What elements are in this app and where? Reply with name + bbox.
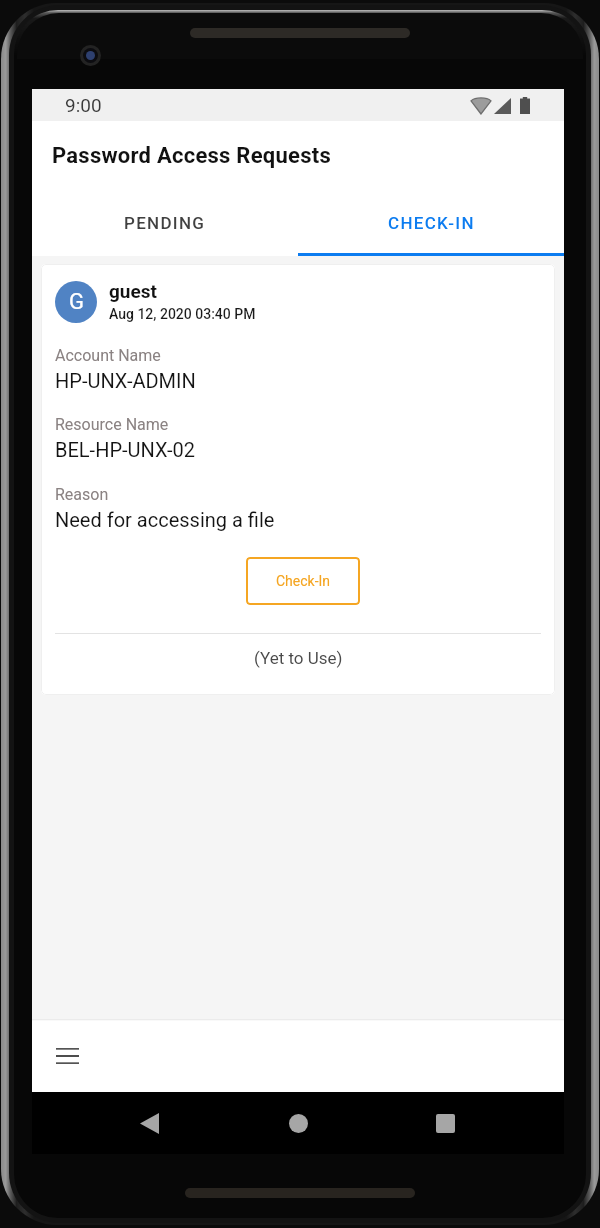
staticText: Account Name [55,346,161,365]
staticText: BEL-HP-UNX-02 [55,438,196,461]
staticText: G [69,289,84,315]
staticText: Need for accessing a file [55,508,275,531]
button[interactable]: Recent apps [421,1099,469,1147]
staticText: Check-In [276,573,331,589]
button[interactable]: Back [125,1099,173,1147]
staticText: PENDING [124,213,206,233]
button[interactable]: Check-In [246,557,360,605]
staticText: Password Access Requests [52,143,332,169]
button[interactable]: Menu [45,1034,89,1078]
staticText: Resource Name [55,415,169,434]
staticText: guest [109,280,157,302]
button[interactable]: Home [274,1099,322,1147]
staticText: (Yet to Use) [254,648,343,668]
staticText: 9:00 [65,94,102,116]
staticText: Aug 12, 2020 03:40 PM [109,306,256,322]
staticText: CHECK-IN [388,213,475,233]
button[interactable]: CHECK-IN [298,190,564,256]
staticText: Reason [55,485,109,504]
button[interactable]: PENDING [32,190,298,256]
staticText: HP-UNX-ADMIN [55,369,196,392]
